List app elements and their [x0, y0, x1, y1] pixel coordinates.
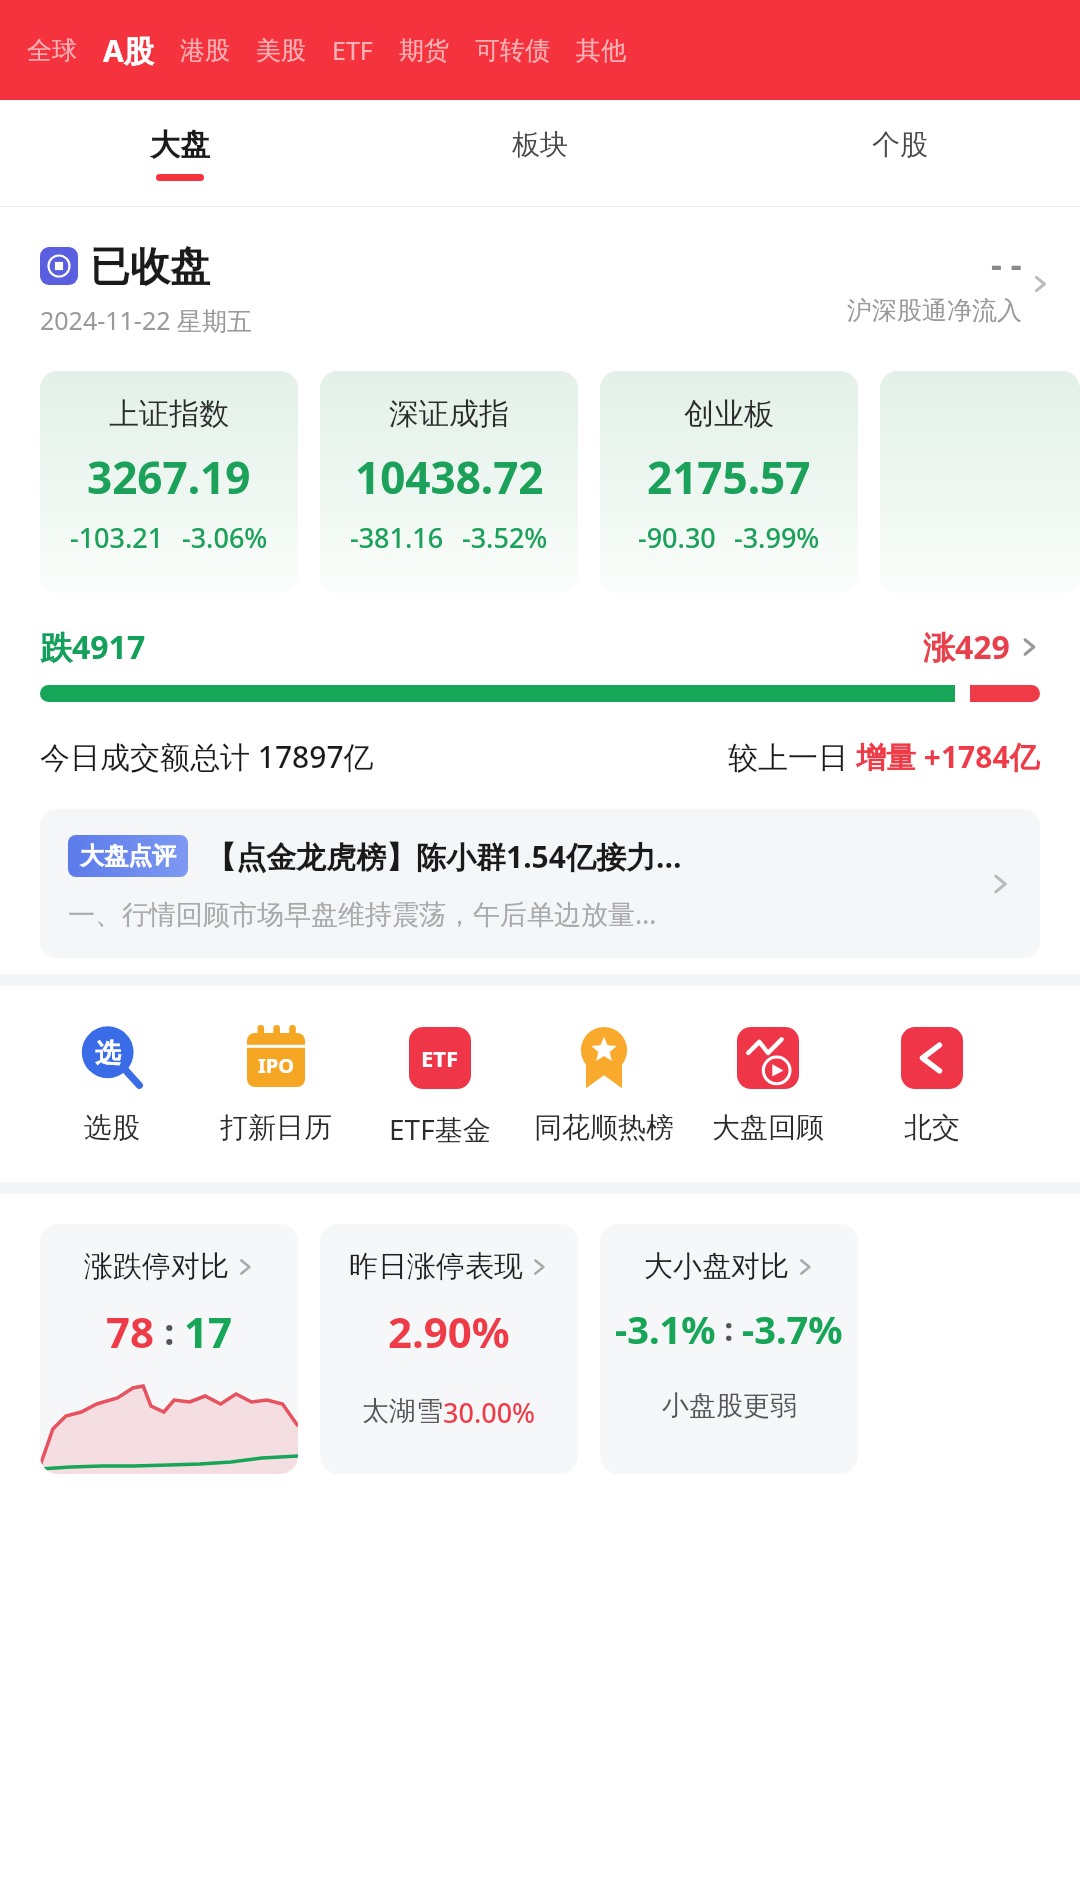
staticText: 北交	[904, 1110, 960, 1145]
staticText: 增量 +1784亿	[856, 736, 1040, 777]
staticText: 涨429	[923, 625, 1010, 669]
staticText: 打新日历	[220, 1110, 332, 1145]
button[interactable]: 上证指数	[40, 371, 298, 593]
staticText: 今日成交额总计 17897亿	[40, 736, 374, 777]
staticText: -3.7%	[742, 1303, 843, 1355]
staticText: 【点金龙虎榜】陈小群1.54亿接力…	[206, 836, 682, 877]
other: 大盘回顾	[737, 1027, 799, 1089]
button[interactable]: 港股	[167, 27, 243, 74]
staticText: 30.00%	[443, 1394, 536, 1431]
staticText: 大盘点评	[80, 841, 176, 871]
staticText: :	[716, 1307, 742, 1351]
button[interactable]: 其他	[563, 27, 639, 74]
staticText: ETF	[421, 1043, 459, 1073]
button[interactable]: 个股	[720, 100, 1080, 206]
staticText: 深证成指	[389, 395, 509, 433]
button[interactable]: A股	[90, 22, 167, 79]
staticText: ETF基金	[389, 1110, 491, 1148]
staticText: 可转债	[475, 35, 550, 66]
other: 选股	[76, 1022, 148, 1094]
staticText: 其他	[576, 35, 626, 66]
staticText: - -	[991, 241, 1022, 287]
staticText: -381.16	[350, 519, 444, 556]
staticText: 78	[106, 1303, 155, 1360]
staticText: 小盘股更弱	[662, 1389, 797, 1423]
staticText: 港股	[180, 35, 230, 66]
staticText: 大盘	[150, 126, 210, 164]
staticText: 创业板	[684, 395, 774, 433]
staticText: 跌4917	[40, 625, 146, 669]
staticText: 板块	[512, 127, 568, 162]
button[interactable]: 可转债	[462, 27, 563, 74]
other: 北交	[901, 1027, 963, 1089]
staticText: -3.52%	[462, 519, 548, 556]
button[interactable]: 大盘	[0, 100, 360, 206]
staticText: 3267.19	[87, 447, 251, 507]
button[interactable]: 涨跌停对比	[40, 1224, 298, 1474]
staticText: 上证指数	[109, 395, 229, 433]
staticText: -90.30	[638, 519, 716, 556]
button[interactable]: 深证成指	[320, 371, 578, 593]
button[interactable]: 期货	[386, 27, 462, 74]
staticText: -3.99%	[734, 519, 820, 556]
staticText: 期货	[399, 35, 449, 66]
staticText: -103.21	[70, 519, 164, 556]
other: ETF基金	[409, 1027, 471, 1089]
staticText: 同花顺热榜	[534, 1110, 674, 1145]
staticText: 全球	[27, 35, 77, 66]
staticText: 美股	[256, 35, 306, 66]
button[interactable]: 美股	[243, 27, 319, 74]
button[interactable]: 大盘回顾	[686, 1022, 850, 1145]
staticText: 昨日涨停表现	[349, 1248, 523, 1285]
staticText: 10438.72	[355, 447, 544, 507]
staticText: 17	[184, 1303, 233, 1360]
button[interactable]: 选股	[30, 1022, 194, 1145]
staticText: 已收盘	[90, 241, 210, 291]
other: 同花顺热榜	[571, 1025, 637, 1091]
button[interactable]: 创业板	[600, 371, 858, 593]
button[interactable]: 大小盘对比	[600, 1224, 858, 1474]
button[interactable]: 大盘点评	[40, 809, 1040, 958]
button[interactable]: 北交	[850, 1022, 1014, 1145]
staticText: 个股	[872, 127, 928, 162]
staticText: 2.90%	[388, 1303, 510, 1360]
button[interactable]: 跌4917	[40, 625, 1040, 669]
staticText: 2024-11-22 星期五	[40, 303, 253, 337]
staticText: IPO	[258, 1052, 295, 1079]
staticText: A股	[103, 30, 154, 71]
staticText: 选	[95, 1037, 121, 1070]
button[interactable]: 全球	[14, 27, 90, 74]
staticText: 选股	[84, 1110, 140, 1145]
staticText: 较上一日	[728, 736, 856, 777]
staticText: 涨跌停对比	[84, 1248, 229, 1285]
staticText: 2175.57	[647, 447, 811, 507]
staticText: 大盘回顾	[712, 1110, 824, 1145]
staticText: 沪深股通净流入	[847, 295, 1022, 326]
button[interactable]: ETF基金	[358, 1022, 522, 1148]
staticText: ETF	[332, 33, 373, 67]
staticText: 一、行情回顾市场早盘维持震荡，午后单边放量…	[68, 895, 657, 932]
button[interactable]: 板块	[360, 100, 720, 206]
staticText: :	[155, 1307, 184, 1356]
button[interactable]: 昨日涨停表现	[320, 1224, 578, 1474]
button[interactable]: 打新日历	[194, 1022, 358, 1145]
button[interactable]: 同花顺热榜	[522, 1022, 686, 1145]
staticText: -3.06%	[182, 519, 268, 556]
staticText: 大小盘对比	[644, 1248, 789, 1285]
staticText: 太湖雪	[362, 1394, 443, 1428]
button[interactable]: - -	[847, 241, 1050, 326]
other: 打新日历	[243, 1025, 309, 1091]
staticText: -3.1%	[615, 1303, 716, 1355]
button[interactable]: ETF	[319, 25, 386, 75]
